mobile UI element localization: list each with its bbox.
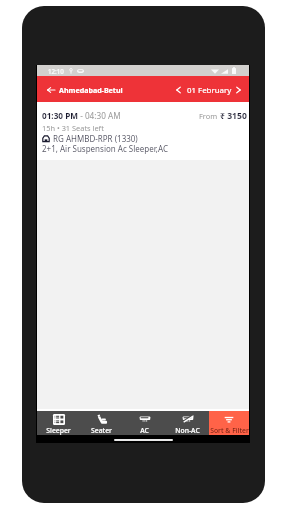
staticText: Non-AC — [175, 426, 200, 435]
button[interactable]: Sort & Filter — [209, 411, 249, 435]
staticText: Sort & Filter — [210, 426, 249, 435]
button[interactable]: 01:30 PM — [37, 102, 249, 160]
staticText: 2+1, Air Suspension Ac Sleeper,AC — [42, 143, 168, 154]
button[interactable]: Next day — [233, 76, 244, 102]
button[interactable]: Sleeper — [37, 411, 80, 435]
staticText: From — [199, 111, 220, 121]
button[interactable]: Previous day — [173, 76, 184, 102]
staticText: - 04:30 AM — [78, 110, 121, 121]
staticText: 01 February — [187, 85, 232, 96]
button[interactable]: Back — [37, 76, 129, 102]
staticText: 15h • 31 Seats left — [42, 123, 104, 133]
staticText: RG AHMBD-RPR (1330) — [53, 133, 138, 144]
staticText: AC — [140, 426, 149, 435]
staticText: 01:30 PM — [42, 110, 78, 121]
button[interactable]: AC — [123, 411, 166, 435]
staticText: Sleeper — [46, 426, 71, 435]
staticText: Ahmedabad-Betul — [59, 85, 123, 95]
button[interactable]: Non-AC — [166, 411, 209, 435]
other: Back — [47, 86, 55, 93]
button[interactable]: Seater — [80, 411, 123, 435]
staticText: Seater — [91, 426, 112, 435]
staticText: 12:10 — [48, 67, 64, 75]
staticText: ₹ 3150 — [220, 110, 247, 121]
